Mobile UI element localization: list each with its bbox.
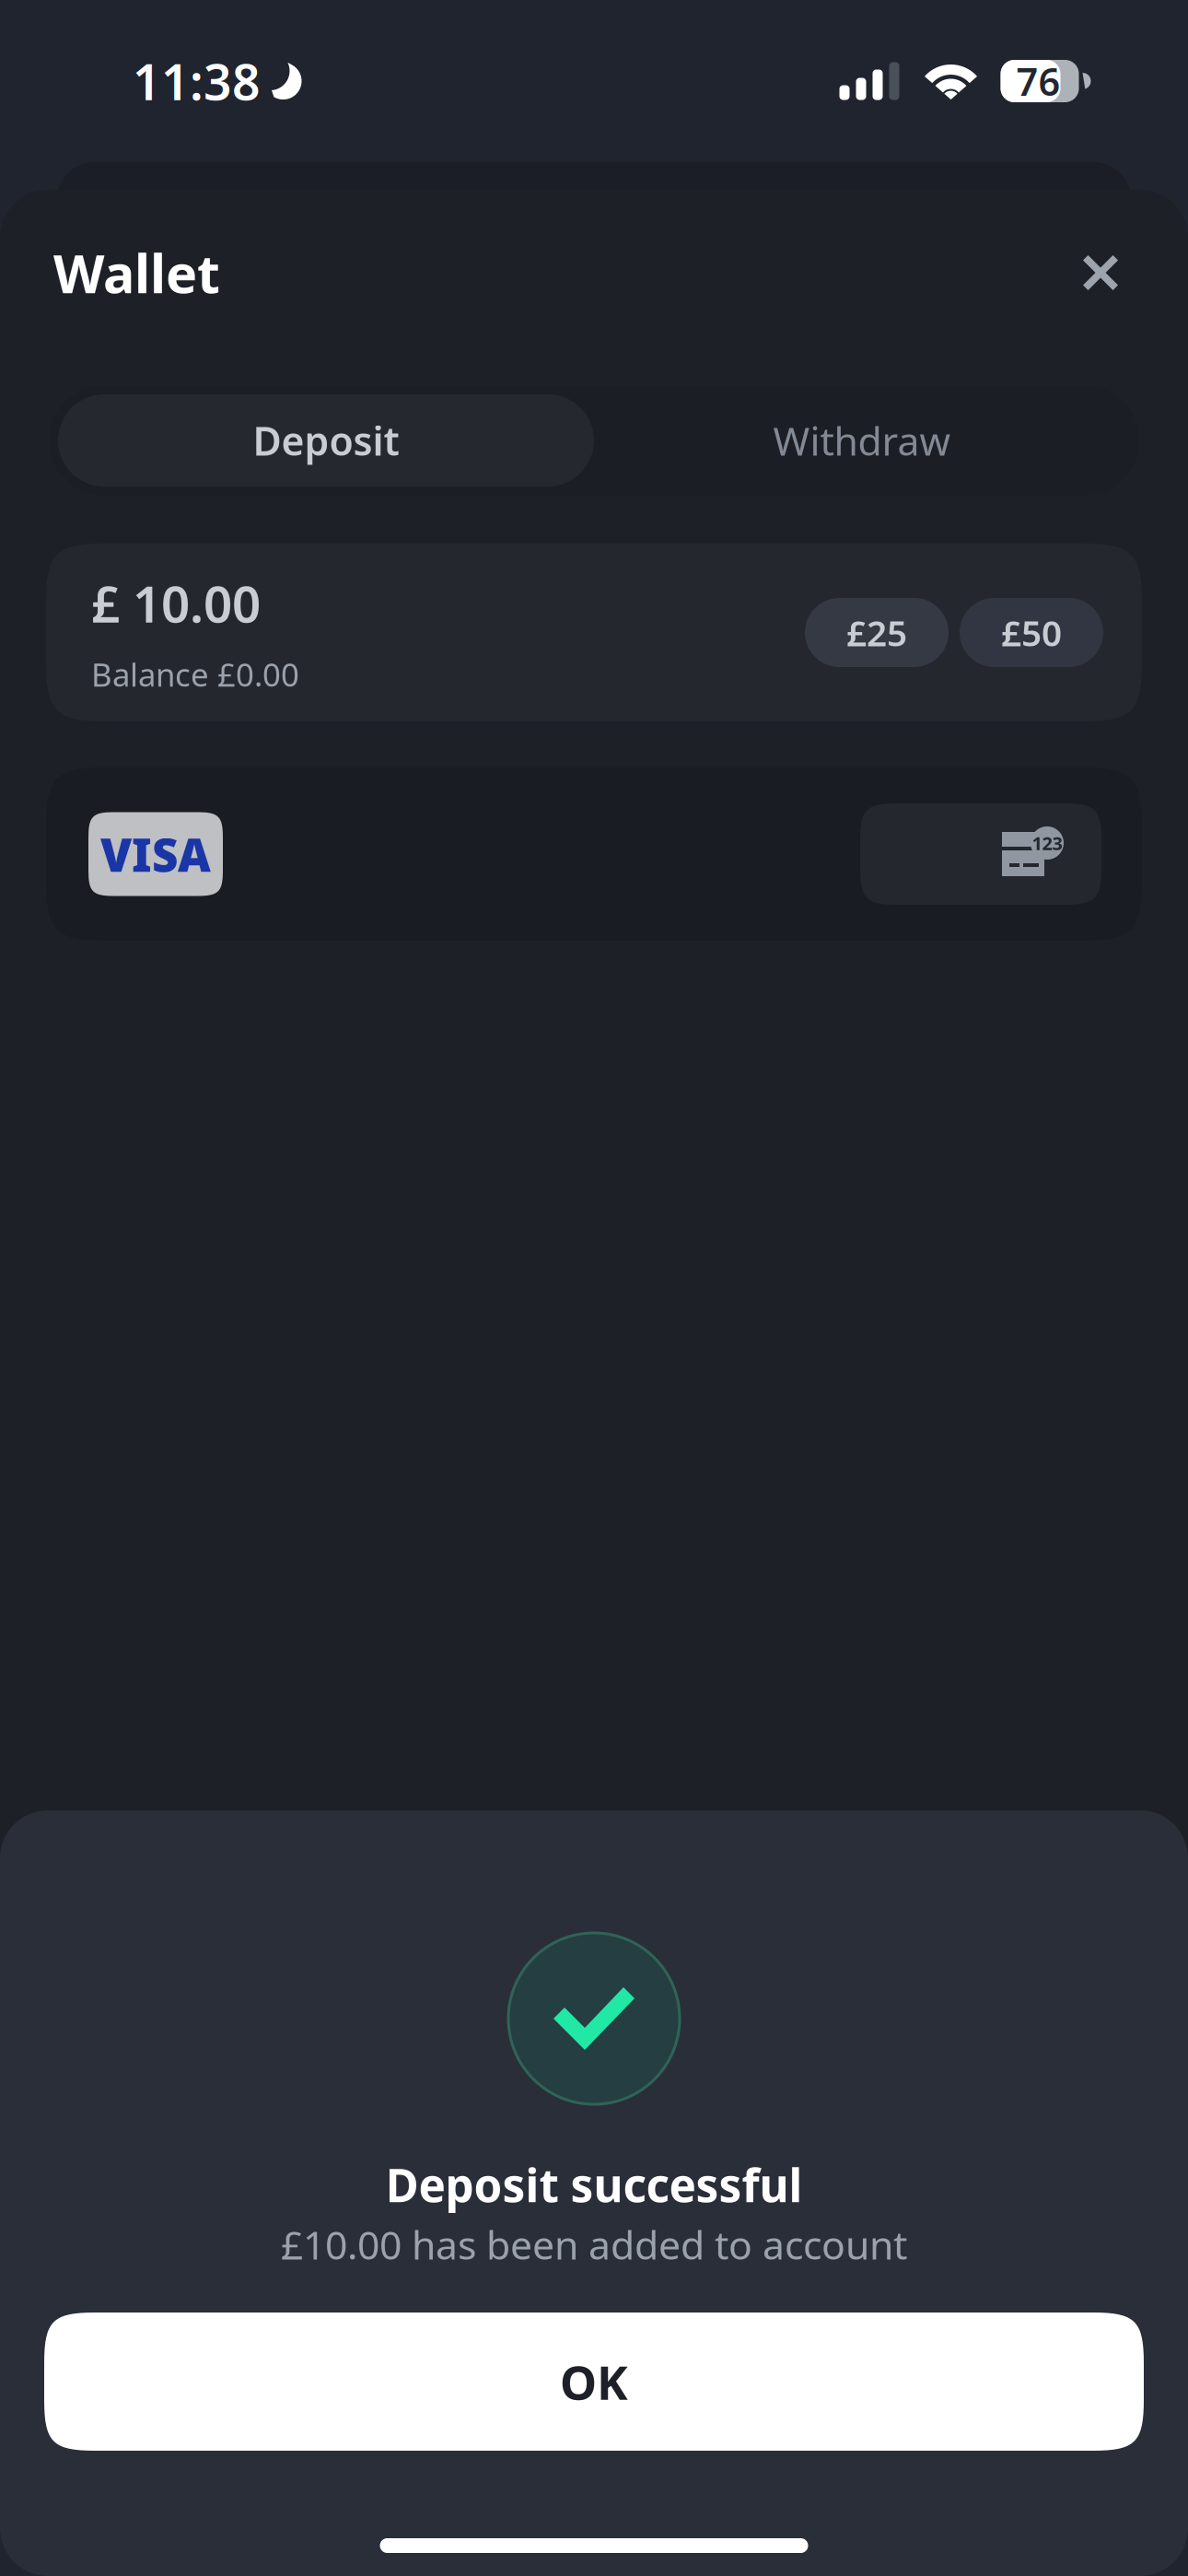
button[interactable]: Withdraw [594,394,1130,486]
button[interactable]: Security code [860,803,1101,905]
staticText: £ 10.00 [91,570,261,636]
staticText: Wallet [53,238,220,308]
staticText: Deposit [253,414,399,467]
staticText: OK [560,2351,628,2413]
staticText: Deposit successful [385,2154,803,2215]
staticText: £50 [1001,609,1062,656]
button[interactable]: Deposit [58,394,594,486]
button[interactable]: Close [1065,237,1136,309]
staticText: 11:38 [133,48,261,114]
button[interactable]: OK [44,2313,1144,2451]
staticText: Balance £0.00 [91,653,299,695]
staticText: £10.00 has been added to account [281,2218,907,2270]
staticText: 123 [1032,831,1062,855]
button[interactable]: £50 [960,598,1103,667]
button[interactable]: £25 [805,598,949,667]
staticText: VISA [100,824,211,884]
staticText: 76 [1016,56,1060,106]
staticText: Withdraw [773,414,951,467]
staticText: £25 [846,609,907,656]
